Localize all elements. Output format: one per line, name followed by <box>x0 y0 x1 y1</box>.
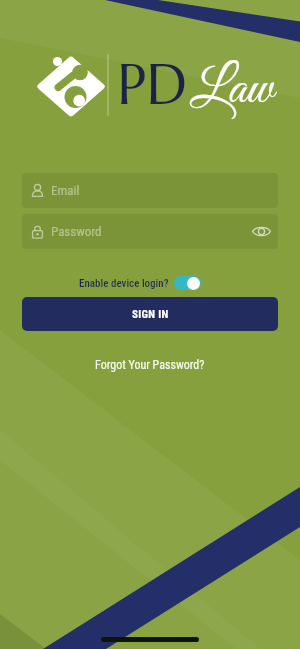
button[interactable] <box>252 222 271 241</box>
button[interactable]: Email <box>22 173 278 208</box>
staticText: SIGN IN <box>132 308 169 321</box>
staticText: Enable device login? <box>79 277 169 290</box>
button[interactable]: SIGN IN <box>22 297 278 331</box>
staticText: Law <box>190 57 274 123</box>
staticText: PD <box>117 48 187 119</box>
button[interactable]: Password <box>22 214 278 249</box>
button[interactable]: Enable device login? <box>0 272 300 294</box>
staticText: Password <box>51 224 252 239</box>
staticText: Email <box>51 183 80 198</box>
button[interactable]: Forgot Your Password? <box>95 358 205 372</box>
